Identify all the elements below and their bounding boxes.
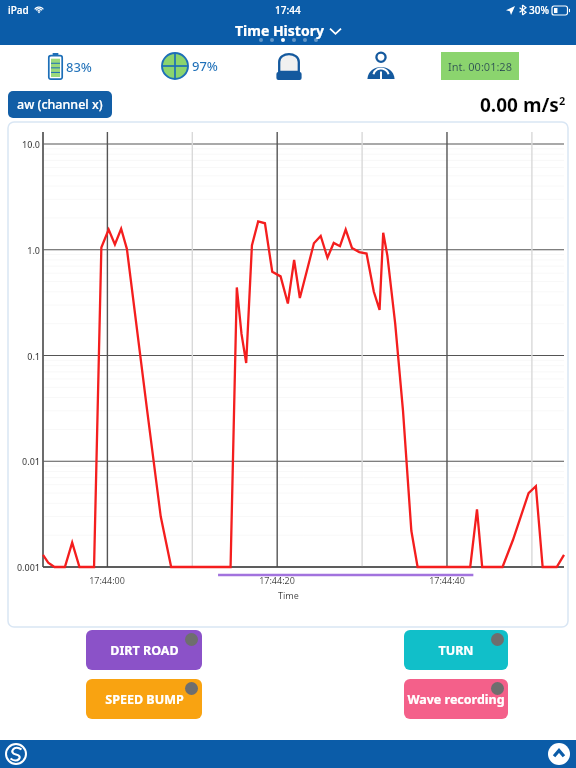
button[interactable]: Storage 97 percent <box>161 52 218 80</box>
staticText: Time <box>278 589 299 601</box>
staticText: 97% <box>192 57 218 75</box>
staticText: TURN <box>438 642 474 659</box>
button[interactable]: Battery 83 percent <box>48 53 92 80</box>
button[interactable]: App menu <box>5 743 27 765</box>
button[interactable]: aw (channel x) <box>8 91 112 118</box>
staticText: iPad <box>8 3 29 17</box>
staticText: aw (channel x) <box>17 96 103 113</box>
button[interactable]: Driver <box>364 51 398 81</box>
staticText: SPEED BUMP <box>105 691 184 708</box>
staticText: 0.001 <box>8 561 40 573</box>
staticText: Int. 00:01:28 <box>448 59 512 74</box>
button[interactable]: SPEED BUMP <box>86 679 202 719</box>
staticText: Wave recording <box>407 691 505 708</box>
staticText: 0.01 <box>8 455 40 467</box>
staticText: 1.0 <box>8 244 40 256</box>
staticText: 30% <box>529 3 549 17</box>
button[interactable]: Scroll to top <box>548 743 570 765</box>
staticText: 17:44:40 <box>423 574 471 586</box>
staticText: 0.00 m/s <box>480 92 559 118</box>
staticText: 83% <box>66 58 92 76</box>
staticText: DIRT ROAD <box>110 642 179 659</box>
staticText: 0.1 <box>8 350 40 362</box>
staticText: 17:44 <box>275 3 301 17</box>
button[interactable]: TURN <box>404 630 508 670</box>
button[interactable]: Beacon status <box>275 51 303 81</box>
staticText: 10.0 <box>8 138 40 150</box>
staticText: Time History <box>235 21 324 40</box>
button[interactable]: DIRT ROAD <box>86 630 202 670</box>
staticText: 17:44:20 <box>253 574 301 586</box>
button[interactable]: Wave recording <box>404 679 508 719</box>
staticText: 17:44:00 <box>83 574 131 586</box>
staticText: 2 <box>559 93 566 108</box>
button[interactable]: Int. 00:01:28 <box>441 52 519 80</box>
